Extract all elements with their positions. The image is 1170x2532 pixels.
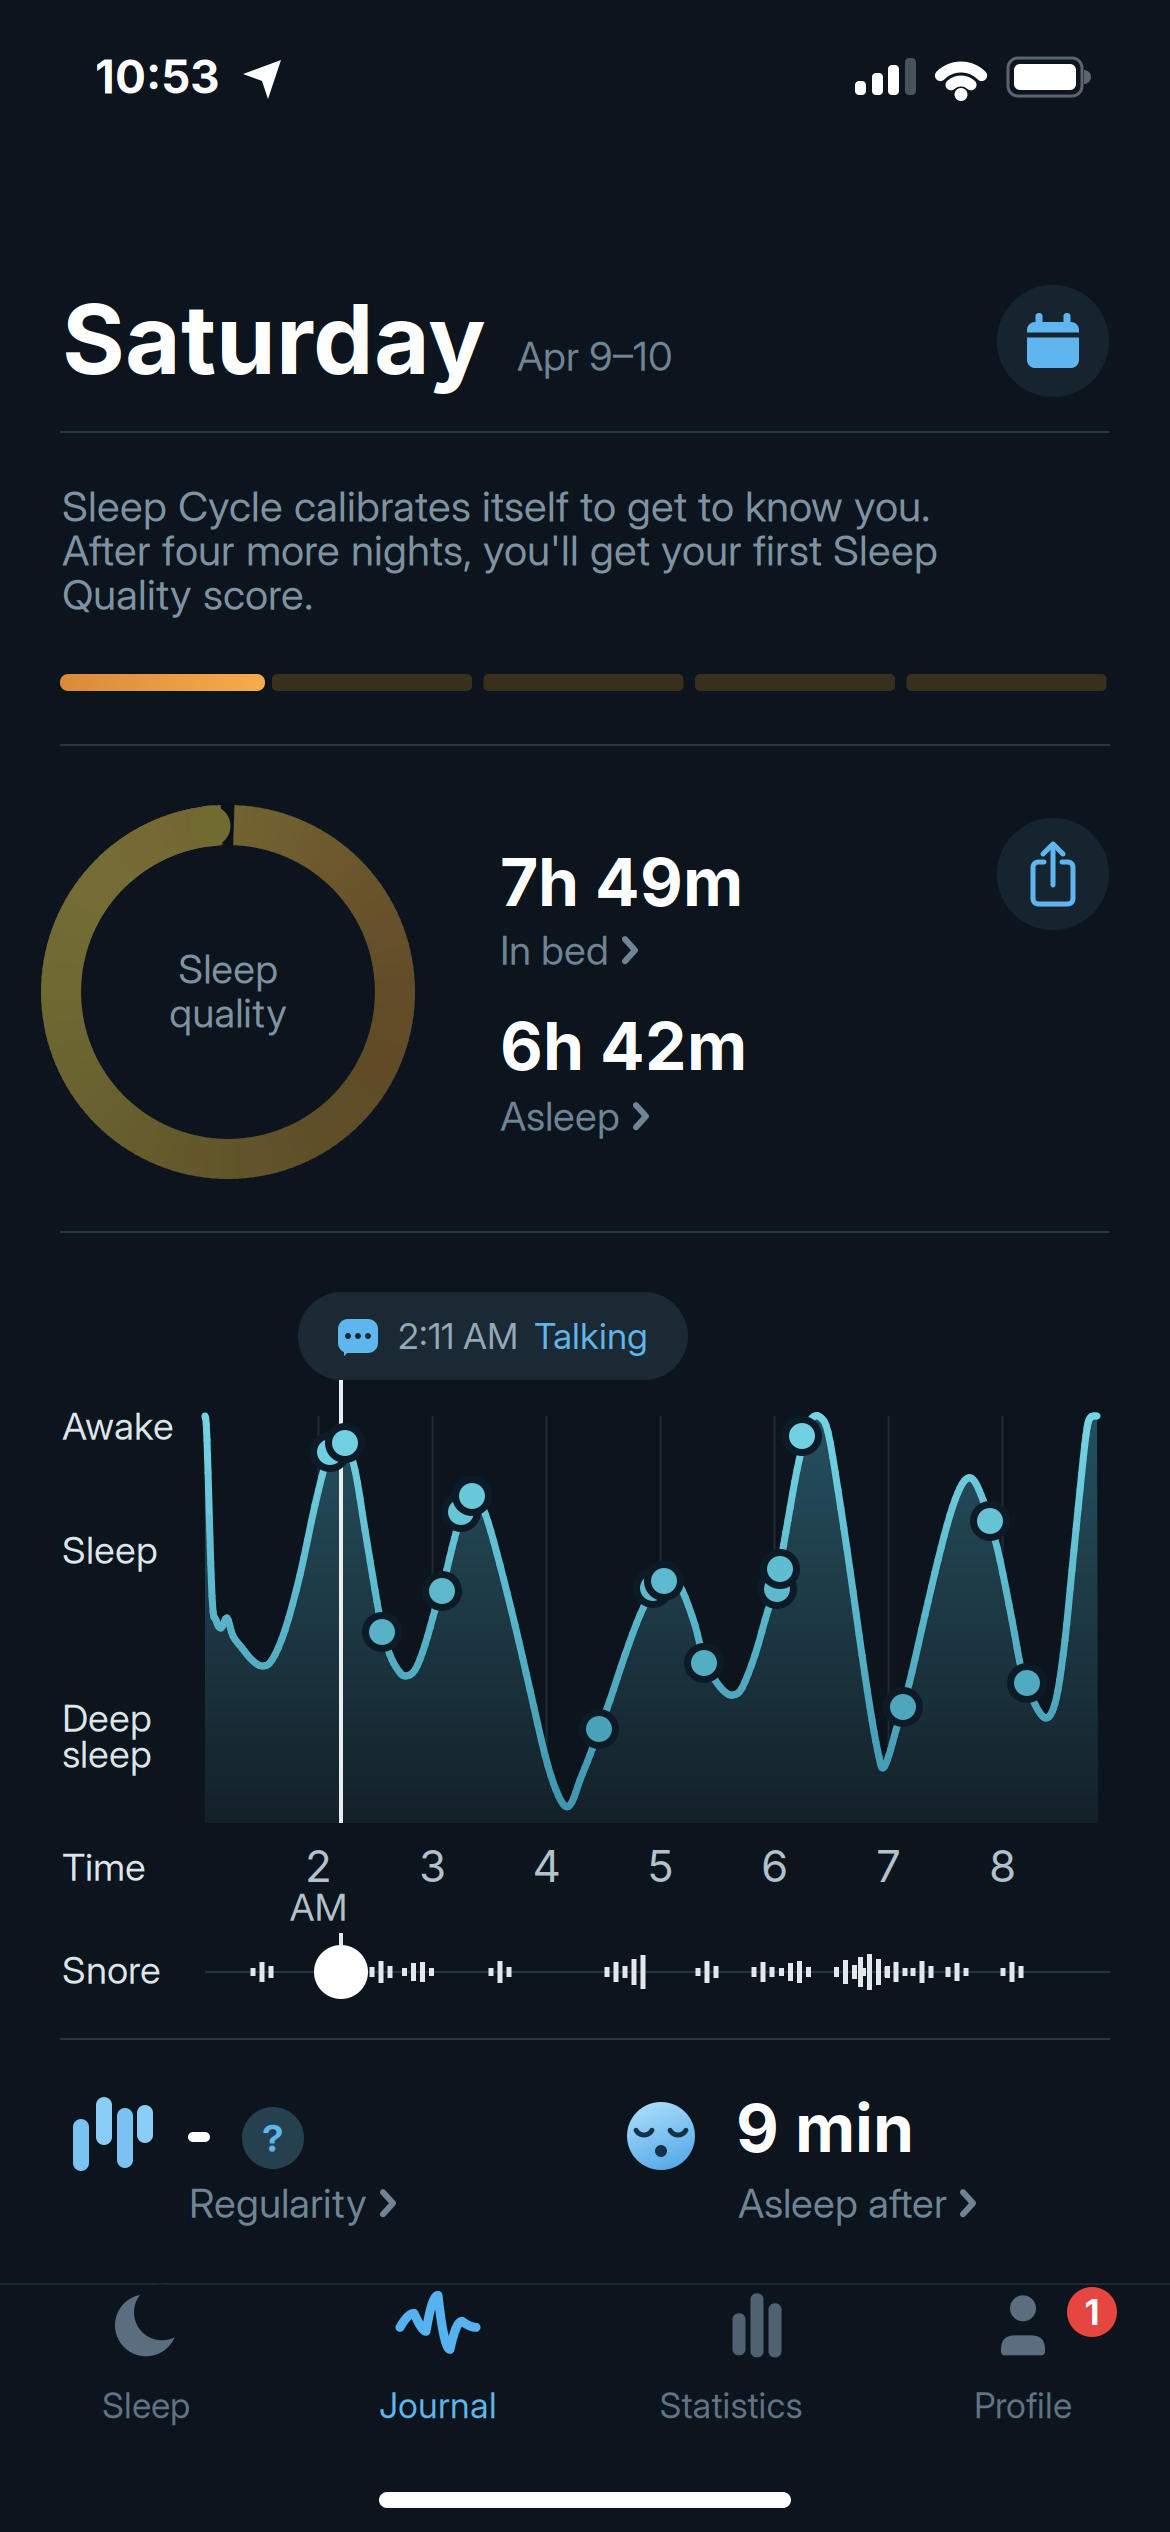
staticText: 6 <box>761 1839 788 1893</box>
staticText: Sleep quality <box>169 947 287 1035</box>
staticText: Deep <box>62 1695 152 1741</box>
staticText: 10:53 <box>95 49 220 105</box>
staticText: Profile <box>974 2384 1072 2427</box>
staticText: 5 <box>647 1839 674 1893</box>
staticText: 2 <box>305 1839 332 1893</box>
staticText: 3 <box>419 1839 446 1893</box>
button[interactable]: Sleep <box>102 2293 190 2427</box>
staticText: Asleep after <box>738 2179 947 2227</box>
staticText: Saturday <box>62 281 486 397</box>
staticText: 4 <box>532 1839 560 1893</box>
staticText: In bed <box>500 926 609 974</box>
staticText: Time <box>62 1844 146 1890</box>
button[interactable]: Calendar <box>997 285 1109 397</box>
staticText: Talking <box>534 1314 648 1358</box>
staticText: 9 min <box>736 2088 914 2168</box>
button[interactable]: Profile <box>974 2293 1072 2427</box>
staticText: Sleep Cycle calibrates itself to get to … <box>62 484 938 617</box>
staticText: Sleep <box>62 1527 158 1573</box>
staticText: Snore <box>62 1947 161 1993</box>
staticText: Asleep <box>500 1092 620 1140</box>
staticText: Awake <box>62 1403 174 1449</box>
button[interactable]: 9 min <box>0 0 1170 2532</box>
button[interactable]: Statistics <box>659 2293 802 2427</box>
staticText: 7 <box>876 1839 901 1893</box>
staticText: 7h 49m <box>500 842 743 922</box>
staticText: 1 <box>1085 2290 1099 2334</box>
staticText: Sleep <box>102 2384 190 2427</box>
button[interactable]: In bed <box>500 926 639 974</box>
button[interactable]: ? <box>0 0 1170 2532</box>
staticText: sleep <box>62 1731 152 1777</box>
staticText: Statistics <box>659 2384 802 2427</box>
staticText: Apr 9–10 <box>517 332 673 380</box>
staticText: 8 <box>989 1839 1016 1893</box>
staticText: Regularity <box>189 2179 367 2227</box>
staticText: ? <box>262 2115 284 2161</box>
staticText: 6h 42m <box>500 1006 747 1086</box>
button[interactable]: Asleep <box>500 1092 650 1140</box>
staticText: 2:11 AM <box>398 1314 518 1358</box>
staticText: Journal <box>379 2384 497 2427</box>
button[interactable]: Journal <box>379 2293 497 2427</box>
button[interactable]: 2:11 AM <box>298 1292 688 1380</box>
button[interactable]: Share <box>997 818 1109 930</box>
staticText: AM <box>289 1884 347 1930</box>
